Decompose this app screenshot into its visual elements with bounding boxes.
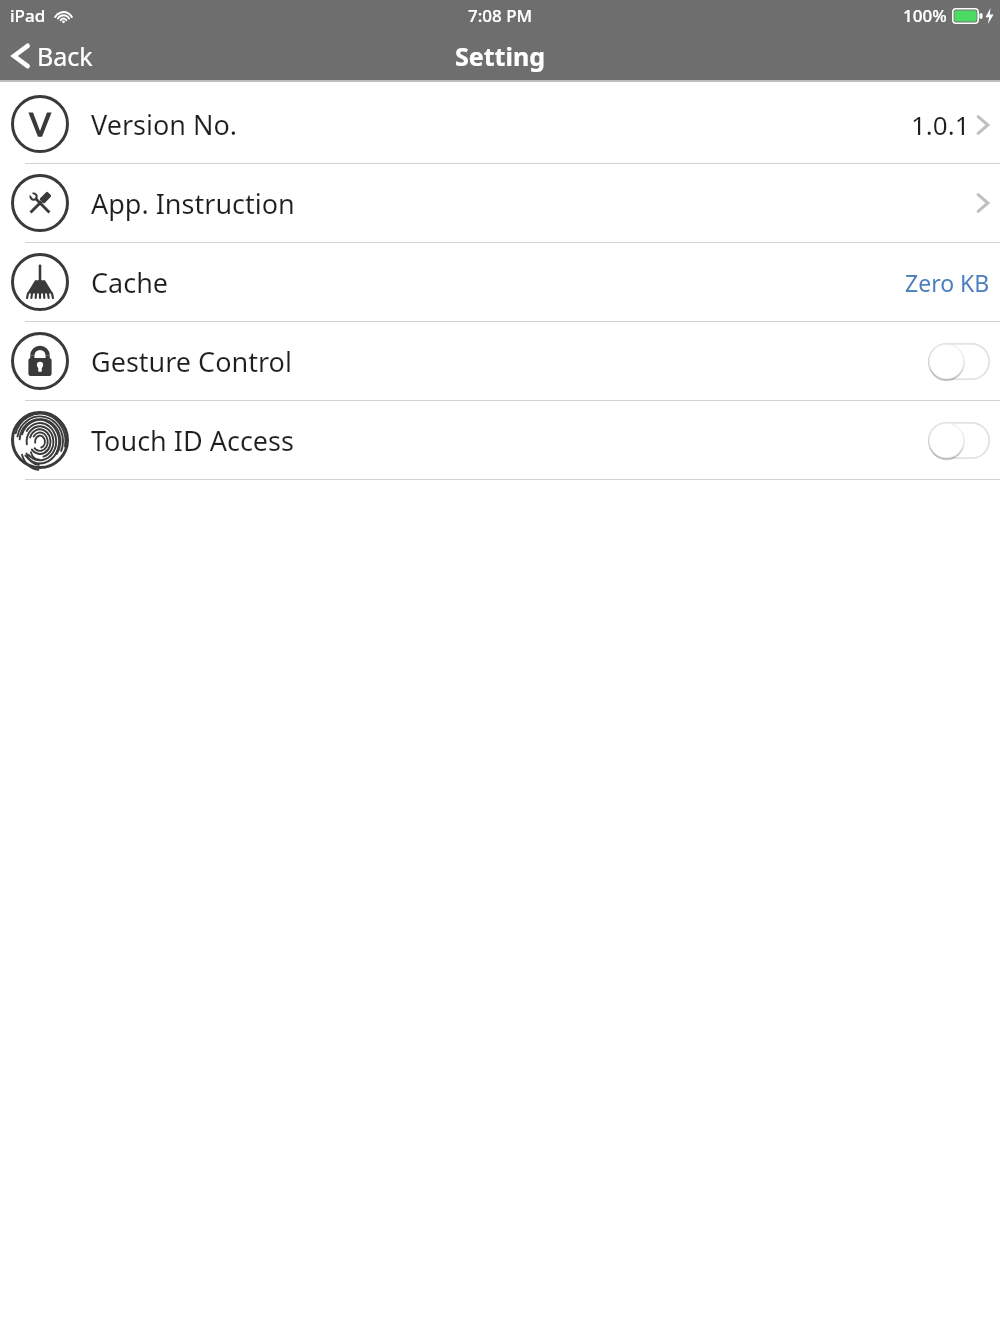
staticText: App. Instruction — [91, 185, 295, 222]
staticText: Cache — [91, 264, 169, 301]
staticText: iPad — [10, 4, 46, 27]
staticText: Gesture Control — [91, 343, 292, 380]
staticText: Zero KB — [905, 267, 990, 298]
button[interactable]: App. Instruction — [0, 164, 1000, 242]
staticText: 1.0.1 — [911, 107, 970, 142]
staticText: Version No. — [91, 106, 238, 143]
button[interactable]: Cache — [0, 243, 1000, 321]
staticText: 7:08 PM — [468, 4, 533, 27]
other: More — [976, 112, 990, 138]
staticText: Back — [37, 39, 93, 73]
button[interactable]: Toggle — [928, 343, 990, 380]
staticText: Setting — [455, 39, 545, 73]
staticText: 100% — [903, 4, 947, 27]
button[interactable]: Back — [0, 30, 107, 82]
staticText: Touch ID Access — [91, 422, 294, 459]
button[interactable]: Toggle — [928, 422, 990, 459]
button[interactable]: Version No. — [0, 85, 1000, 163]
button[interactable]: Touch ID Access — [0, 401, 1000, 479]
other: More — [976, 190, 990, 216]
button[interactable]: Gesture Control — [0, 322, 1000, 400]
